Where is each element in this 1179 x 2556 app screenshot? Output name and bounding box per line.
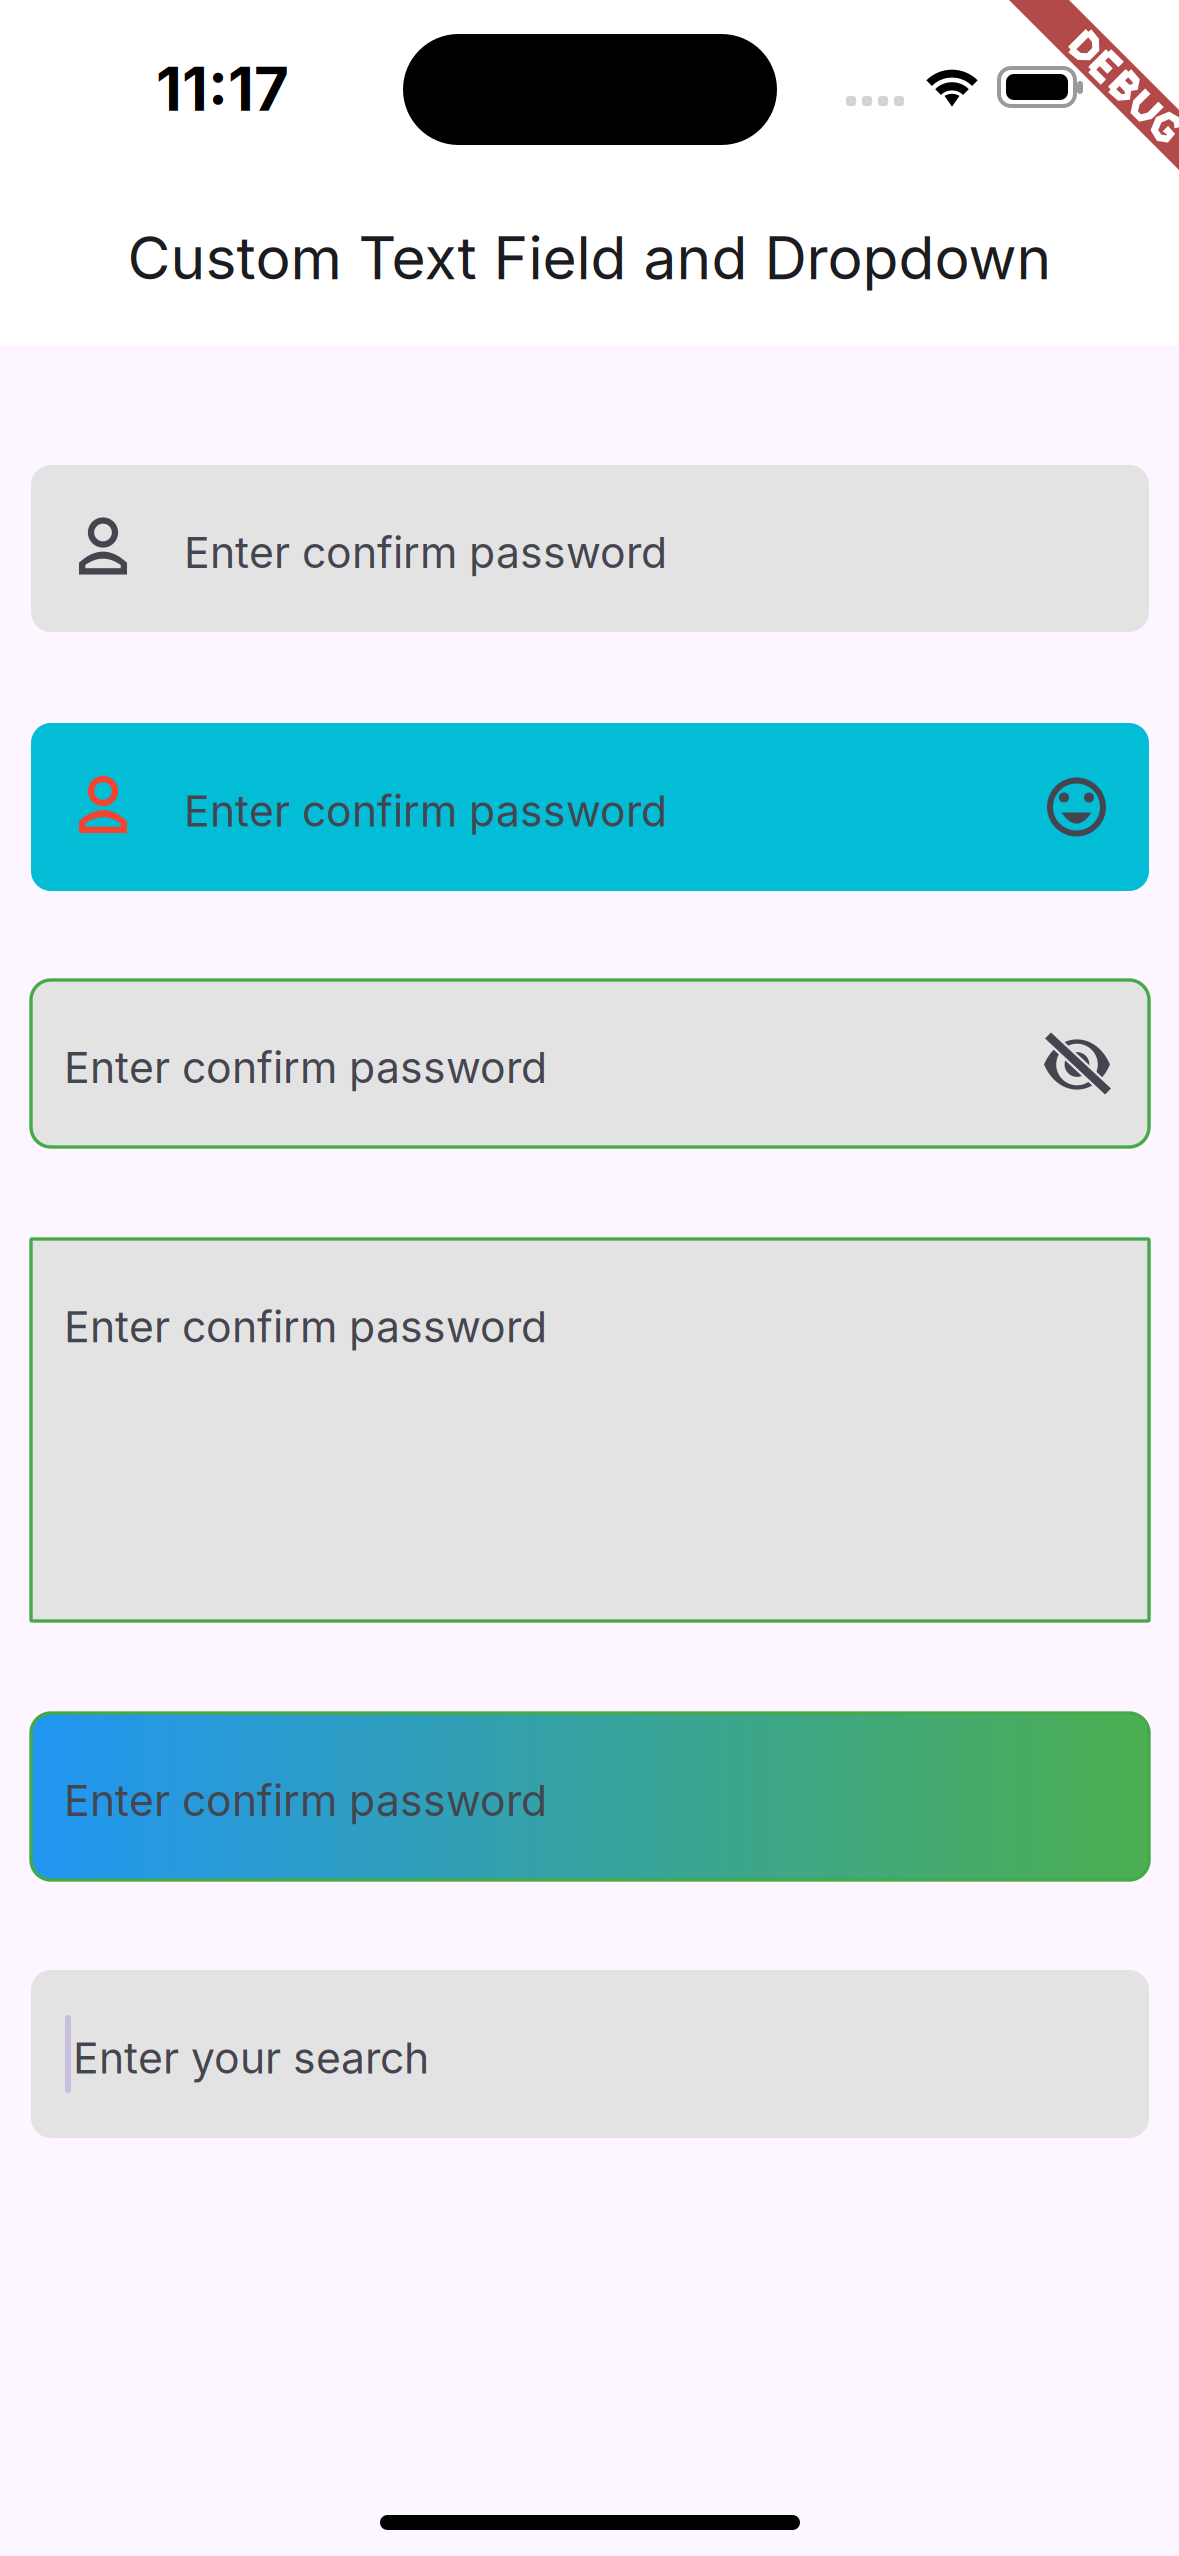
button[interactable]: Enter confirm password (31, 465, 1149, 632)
staticText: Enter your search (73, 2032, 429, 2084)
staticText: Enter confirm password (64, 1301, 547, 1353)
staticText: 11:17 (156, 53, 289, 125)
button[interactable]: Enter your search (31, 1970, 1149, 2138)
staticText: Enter confirm password (184, 527, 667, 578)
button[interactable]: Enter confirm password (31, 1239, 1149, 1621)
button[interactable]: Enter confirm password (31, 980, 1149, 1147)
button[interactable]: Enter confirm password (31, 1713, 1149, 1880)
staticText: Custom Text Field and Dropdown (127, 222, 1051, 293)
staticText: Enter confirm password (64, 1042, 547, 1093)
staticText: Enter confirm password (184, 785, 667, 837)
staticText: Enter confirm password (64, 1775, 547, 1826)
button[interactable]: Enter confirm password (31, 723, 1149, 891)
